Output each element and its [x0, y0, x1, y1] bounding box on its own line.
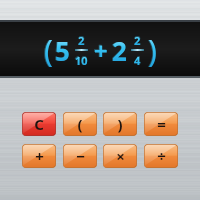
- staticText: (: [43, 29, 53, 71]
- staticText: C: [34, 114, 44, 134]
- staticText: ): [147, 29, 157, 71]
- button[interactable]: Plus: [22, 144, 56, 168]
- staticText: 2: [134, 32, 141, 48]
- staticText: (: [77, 114, 83, 134]
- button[interactable]: Open parenthesis: [63, 112, 97, 136]
- staticText: ×: [116, 146, 125, 166]
- staticText: 2: [112, 33, 127, 68]
- staticText: (: [44, 30, 53, 71]
- staticText: +: [93, 33, 108, 67]
- staticText: −: [76, 146, 85, 166]
- staticText: 4: [134, 52, 141, 68]
- staticText: 5: [55, 33, 70, 68]
- staticText: ÷: [157, 146, 166, 166]
- staticText: ): [148, 30, 157, 71]
- button[interactable]: Divide: [144, 144, 178, 168]
- staticText: 4: [134, 53, 141, 68]
- button[interactable]: Clear: [22, 112, 56, 136]
- staticText: =: [157, 114, 166, 134]
- staticText: +: [35, 146, 44, 166]
- staticText: 2: [78, 33, 85, 48]
- button[interactable]: Minus: [63, 144, 97, 168]
- staticText: +: [94, 34, 108, 67]
- button[interactable]: Close parenthesis: [103, 112, 137, 136]
- staticText: 5: [54, 32, 70, 69]
- staticText: 2: [111, 32, 127, 69]
- staticText: 2: [134, 33, 141, 48]
- staticText: 10: [74, 52, 88, 68]
- button[interactable]: Multiply: [103, 144, 137, 168]
- staticText: 10: [75, 53, 88, 68]
- staticText: ): [117, 114, 123, 134]
- staticText: 2: [78, 32, 85, 48]
- button[interactable]: Equals: [144, 112, 178, 136]
